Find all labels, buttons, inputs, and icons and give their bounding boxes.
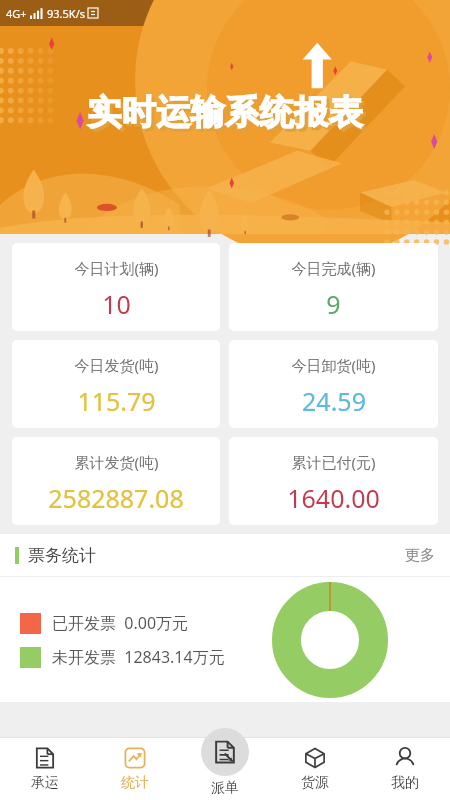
staticText: 4G+	[6, 6, 27, 21]
staticText: 今日卸货(吨)	[291, 355, 376, 375]
button[interactable]: 货源	[270, 738, 360, 800]
staticText: 统计	[121, 774, 149, 792]
staticText: 货源	[301, 774, 329, 792]
staticText: 实时运输系统报表	[87, 91, 363, 134]
staticText: 22:56	[210, 5, 241, 21]
staticText: 已开发票 0.00万元	[52, 612, 189, 634]
button[interactable]: 累计发货(吨)	[12, 437, 220, 525]
other: 派单	[201, 728, 249, 776]
staticText: 9	[326, 287, 341, 321]
button[interactable]: 我的	[360, 738, 450, 800]
staticText: 24.59	[302, 384, 366, 418]
staticText: 今日发货(吨)	[74, 355, 159, 375]
button[interactable]: 派单	[180, 728, 270, 800]
staticText: 2582887.08	[48, 481, 184, 515]
button[interactable]: 承运	[0, 738, 90, 800]
staticText: 承运	[31, 774, 59, 792]
staticText: 10	[102, 287, 131, 321]
staticText: 115.79	[77, 384, 156, 418]
staticText: 实时运输系统报表	[90, 94, 366, 137]
button[interactable]: 今日计划(辆)	[12, 243, 220, 331]
button[interactable]: 统计	[90, 738, 180, 800]
staticText: 派单	[211, 779, 239, 794]
staticText: 我的	[391, 774, 419, 792]
staticText: 1640.00	[287, 481, 380, 515]
staticText: 今日计划(辆)	[74, 258, 159, 278]
button[interactable]: 今日完成(辆)	[229, 243, 438, 331]
staticText: 累计已付(元)	[291, 452, 376, 472]
staticText: 票务统计	[28, 545, 96, 566]
staticText: 更多	[405, 546, 435, 565]
button[interactable]: 累计已付(元)	[229, 437, 438, 525]
staticText: 93.5K/s	[47, 6, 85, 21]
staticText: 今日完成(辆)	[291, 258, 376, 278]
button[interactable]: 今日发货(吨)	[12, 340, 220, 428]
button[interactable]: 票务统计	[0, 534, 450, 576]
staticText: 累计发货(吨)	[74, 452, 159, 472]
staticText: 未开发票 12843.14万元	[52, 646, 225, 668]
button[interactable]: 今日卸货(吨)	[229, 340, 438, 428]
